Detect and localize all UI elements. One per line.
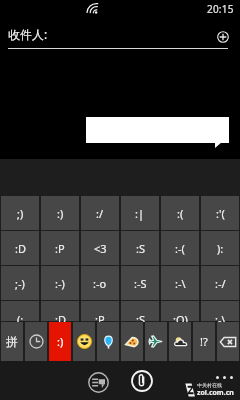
staticText: :D — [15, 241, 26, 256]
button[interactable]: ;-) — [1, 266, 39, 300]
staticText: 收件人: — [8, 26, 48, 42]
staticText: <3 — [94, 241, 107, 256]
button[interactable]: :-\ — [201, 301, 239, 321]
staticText: zol.com.cn — [197, 388, 234, 398]
staticText: :'( — [216, 206, 225, 221]
button[interactable]: Symbols — [193, 322, 215, 361]
button[interactable]: More options — [208, 361, 240, 393]
button[interactable]: :-( — [161, 231, 199, 265]
staticText: :S — [136, 312, 145, 322]
staticText: :| — [135, 206, 145, 221]
staticText: 拼 — [6, 334, 18, 349]
button[interactable]: :P — [81, 301, 119, 321]
staticText: (: — [17, 312, 24, 322]
button[interactable]: :( — [161, 196, 199, 230]
button[interactable]: Smileys — [49, 322, 71, 361]
staticText: :P — [55, 241, 65, 256]
button[interactable]: :O) — [161, 301, 199, 321]
button[interactable]: Emotions — [73, 322, 95, 361]
staticText: 20:15 — [207, 2, 234, 16]
staticText: :) — [57, 206, 64, 221]
button[interactable]: Celebration — [97, 322, 119, 361]
button[interactable]: :-o — [81, 266, 119, 300]
button[interactable]: :-S — [121, 266, 159, 300]
staticText: :/ — [96, 206, 104, 221]
button[interactable]: :P — [41, 231, 79, 265]
button[interactable]: Add recipient — [216, 30, 230, 44]
button[interactable]: Backspace — [217, 322, 239, 361]
staticText: ): — [217, 241, 224, 256]
button[interactable]: :-\ — [161, 266, 199, 300]
button[interactable]: :) — [41, 196, 79, 230]
staticText: :( — [177, 206, 184, 221]
button[interactable]: Weather — [169, 322, 191, 361]
button[interactable]: ): — [201, 231, 239, 265]
button[interactable]: ;) — [1, 196, 39, 230]
staticText: :-\ — [215, 312, 226, 322]
staticText: :-S — [134, 276, 147, 291]
staticText: :D — [55, 312, 66, 322]
staticText: :-\ — [175, 276, 186, 291]
button[interactable]: :D — [41, 301, 79, 321]
button[interactable]: Send — [83, 367, 113, 397]
button[interactable]: Travel — [145, 322, 167, 361]
button[interactable]: Pinyin — [1, 322, 23, 361]
staticText: :-) — [55, 276, 65, 291]
button[interactable]: <3 — [81, 231, 119, 265]
staticText: !? — [200, 334, 208, 349]
staticText: :-/ — [215, 276, 226, 291]
button[interactable]: :D — [1, 231, 39, 265]
button[interactable]: Food — [121, 322, 143, 361]
button[interactable]: :S — [121, 231, 159, 265]
button[interactable]: :| — [121, 196, 159, 230]
staticText: :P — [95, 312, 105, 322]
button[interactable]: :/ — [81, 196, 119, 230]
staticText: :S — [136, 241, 145, 256]
button[interactable]: :S — [121, 301, 159, 321]
button[interactable]: Recent — [25, 322, 47, 361]
staticText: 中关村在线 — [197, 382, 222, 388]
staticText: :-o — [93, 276, 107, 291]
staticText: :O) — [173, 312, 188, 322]
button[interactable]: :-/ — [201, 266, 239, 300]
button[interactable]: :'( — [201, 196, 239, 230]
button[interactable]: :-) — [41, 266, 79, 300]
button[interactable]: (: — [1, 301, 39, 321]
staticText: ;-) — [15, 276, 25, 291]
staticText: ;) — [17, 206, 24, 221]
button[interactable]: Attach — [127, 366, 157, 396]
staticText: :) — [57, 334, 64, 349]
staticText: :-( — [175, 241, 185, 256]
